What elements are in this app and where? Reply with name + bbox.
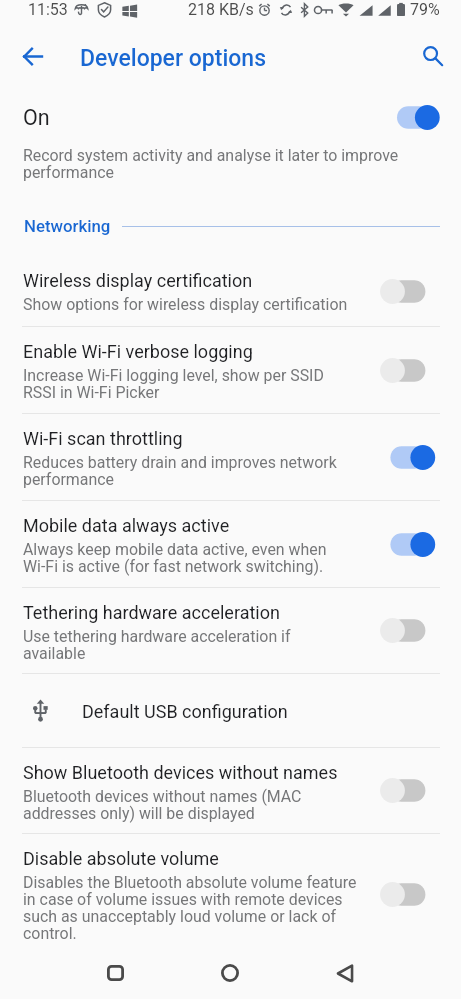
- button[interactable]: Back: [10, 34, 54, 78]
- button[interactable]: Home: [201, 949, 259, 997]
- button[interactable]: Disable absolute volume: [0, 834, 461, 956]
- staticText: Tethering hardware acceleration: [23, 602, 280, 623]
- staticText: Show Bluetooth devices without names: [23, 762, 338, 783]
- button[interactable]: Default USB configuration: [0, 674, 461, 748]
- staticText: Increase Wi-Fi logging level, show per S…: [23, 368, 324, 402]
- staticText: Always keep mobile data active, even whe…: [23, 542, 327, 576]
- staticText: Enable Wi-Fi verbose logging: [23, 341, 253, 362]
- staticText: 79%: [410, 0, 440, 19]
- button[interactable]: Wireless display certification: [0, 256, 461, 327]
- staticText: Record system activity and analyse it la…: [23, 148, 399, 182]
- staticText: 218 KB/s: [188, 0, 254, 19]
- button[interactable]: On: [0, 88, 461, 205]
- staticText: Disable absolute volume: [23, 848, 219, 869]
- staticText: Default USB configuration: [82, 701, 288, 722]
- staticText: Disables the Bluetooth absolute volume f…: [23, 875, 357, 943]
- button[interactable]: Tethering hardware acceleration: [0, 588, 461, 674]
- button[interactable]: Search: [412, 35, 454, 77]
- staticText: Use tethering hardware acceleration if a…: [23, 629, 291, 663]
- staticText: Wi-Fi scan throttling: [23, 428, 183, 449]
- staticText: Developer options: [80, 45, 266, 72]
- staticText: Networking: [24, 216, 111, 236]
- button[interactable]: Enable Wi-Fi verbose logging: [0, 327, 461, 414]
- button[interactable]: Mobile data always active: [0, 501, 461, 588]
- staticText: Reduces battery drain and improves netwo…: [23, 455, 337, 489]
- button[interactable]: Wi-Fi scan throttling: [0, 414, 461, 501]
- button[interactable]: Recent apps: [86, 949, 144, 997]
- staticText: Bluetooth devices without names (MAC add…: [23, 789, 302, 823]
- staticText: 11:53: [28, 0, 68, 19]
- staticText: Show options for wireless display certif…: [23, 297, 348, 314]
- button[interactable]: Show Bluetooth devices without names: [0, 748, 461, 834]
- staticText: Mobile data always active: [23, 515, 230, 536]
- button[interactable]: Back: [316, 949, 374, 997]
- staticText: On: [23, 105, 50, 130]
- staticText: Wireless display certification: [23, 270, 253, 291]
